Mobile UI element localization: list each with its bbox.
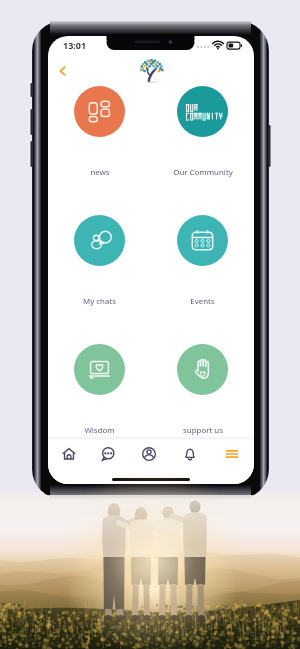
button[interactable]: Wisdom bbox=[48, 330, 151, 459]
staticText: 13:01 bbox=[63, 39, 87, 51]
staticText: Our Community bbox=[173, 167, 233, 178]
button[interactable]: Our Community bbox=[151, 72, 254, 201]
button[interactable]: Back bbox=[52, 60, 74, 82]
staticText: Events bbox=[190, 296, 215, 307]
button[interactable]: support us bbox=[151, 330, 254, 459]
staticText: support us bbox=[183, 425, 223, 436]
button[interactable]: Notifications bbox=[176, 440, 204, 468]
button[interactable]: Home bbox=[55, 440, 83, 468]
staticText: Wisdom bbox=[84, 425, 115, 436]
button[interactable]: Profile bbox=[135, 440, 163, 468]
button[interactable]: Chats bbox=[94, 440, 122, 468]
button[interactable]: Events bbox=[151, 201, 254, 330]
button[interactable]: Menu bbox=[218, 440, 246, 468]
button[interactable]: news bbox=[48, 72, 151, 201]
button[interactable]: My chats bbox=[48, 201, 151, 330]
staticText: My chats bbox=[83, 296, 116, 307]
staticText: news bbox=[90, 167, 110, 178]
